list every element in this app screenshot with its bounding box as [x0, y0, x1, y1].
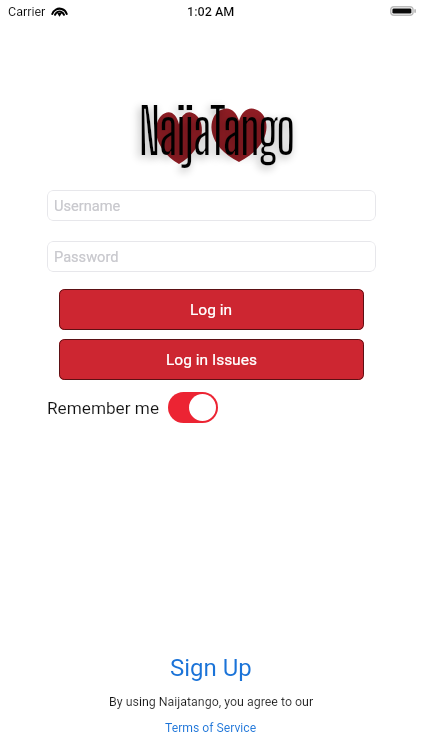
button[interactable]: Username [47, 190, 376, 221]
button[interactable]: Log in Issues [59, 339, 364, 380]
staticText: Carrier [8, 4, 46, 19]
staticText: 1:02 AM [187, 4, 235, 19]
staticText: Terms of Service [165, 721, 257, 735]
staticText: By using Naijatango, you agree to our [109, 694, 314, 709]
button[interactable]: Password [47, 241, 376, 272]
staticText: Sign Up [170, 654, 252, 682]
staticText: Password [54, 248, 119, 265]
button[interactable]: Remember me [168, 392, 218, 423]
staticText: Log in Issues [166, 351, 257, 369]
button[interactable]: Log in [59, 289, 364, 330]
button[interactable]: Sign Up [156, 652, 266, 684]
staticText: NaijaTango [139, 93, 295, 168]
button[interactable]: Terms of Service [155, 720, 267, 736]
staticText: Remember me [47, 398, 160, 418]
staticText: Log in [190, 301, 233, 319]
staticText: Username [54, 197, 121, 214]
